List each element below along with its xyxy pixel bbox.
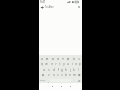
button[interactable]: Translate — [66, 57, 70, 61]
staticText: ?123 — [40, 79, 45, 82]
button[interactable]: Search — [72, 57, 76, 61]
staticText: g — [61, 68, 63, 72]
button[interactable]: d — [51, 67, 56, 72]
staticText: 9:41 — [40, 0, 46, 4]
button[interactable]: e — [49, 61, 54, 66]
staticText: u — [67, 62, 69, 66]
staticText: j — [70, 68, 71, 72]
staticText: s — [48, 68, 50, 72]
button[interactable]: c — [56, 72, 60, 77]
button[interactable]: j — [68, 67, 72, 72]
button[interactable]: More options — [77, 5, 81, 9]
button[interactable]: n — [68, 72, 72, 77]
button[interactable]: b — [64, 72, 68, 77]
staticText: q — [41, 62, 43, 66]
button[interactable]: r — [54, 61, 58, 66]
staticText: w — [45, 62, 48, 66]
button[interactable]: q — [39, 61, 44, 66]
button[interactable]: i — [70, 61, 74, 66]
staticText: f — [58, 68, 59, 72]
button[interactable]: Clipboard — [56, 57, 60, 61]
button[interactable]: . — [71, 78, 75, 83]
button[interactable]: s — [46, 67, 51, 72]
staticText: t — [59, 62, 61, 66]
staticText: i — [72, 62, 73, 66]
button[interactable]: w — [44, 61, 49, 66]
button[interactable]: Home — [57, 83, 66, 89]
button[interactable]: h — [64, 67, 68, 72]
staticText: k — [73, 68, 75, 72]
staticText: p — [79, 62, 81, 66]
staticText: d — [53, 68, 55, 72]
button[interactable]: Shift — [39, 72, 46, 77]
button[interactable]: , — [46, 78, 50, 83]
staticText: a — [43, 68, 45, 72]
button[interactable]: GIF — [51, 57, 55, 61]
button[interactable]: Voice input — [61, 57, 65, 61]
staticText: l — [78, 68, 79, 72]
button[interactable]: p — [78, 61, 82, 66]
staticText: y — [63, 62, 65, 66]
button[interactable]: v — [60, 72, 64, 77]
staticText: To Alex — [45, 5, 54, 9]
staticText: e — [51, 62, 53, 66]
button[interactable]: x — [51, 72, 56, 77]
button[interactable]: Backspace — [76, 72, 82, 77]
staticText: . — [73, 79, 74, 83]
staticText: r — [55, 62, 57, 66]
button[interactable]: z — [46, 72, 51, 77]
staticText: h — [65, 68, 67, 72]
button[interactable]: Recents — [66, 83, 75, 89]
staticText: c — [57, 73, 59, 77]
button[interactable]: ?123 — [39, 78, 46, 83]
button[interactable]: a — [41, 67, 46, 72]
button[interactable]: k — [72, 67, 76, 72]
button[interactable]: g — [60, 67, 64, 72]
button[interactable]: u — [66, 61, 70, 66]
button[interactable]: o — [74, 61, 78, 66]
staticText: x — [53, 73, 55, 77]
button[interactable]: Back — [48, 83, 57, 89]
button[interactable]: Settings — [40, 57, 44, 61]
staticText: m — [73, 73, 76, 77]
staticText: n — [69, 73, 71, 77]
staticText: , — [48, 79, 49, 83]
button[interactable]: Back — [40, 5, 44, 9]
button[interactable]: More — [77, 57, 81, 61]
button[interactable]: y — [62, 61, 66, 66]
staticText: z — [48, 73, 50, 77]
button[interactable]: f — [56, 67, 60, 72]
staticText: o — [75, 62, 77, 66]
button[interactable]: t — [58, 61, 62, 66]
staticText: v — [61, 73, 63, 77]
button[interactable]: Stickers — [45, 57, 49, 61]
button[interactable]: l — [76, 67, 80, 72]
button[interactable]: m — [72, 72, 76, 77]
staticText: b — [65, 73, 67, 77]
button[interactable]: Enter — [75, 78, 82, 83]
